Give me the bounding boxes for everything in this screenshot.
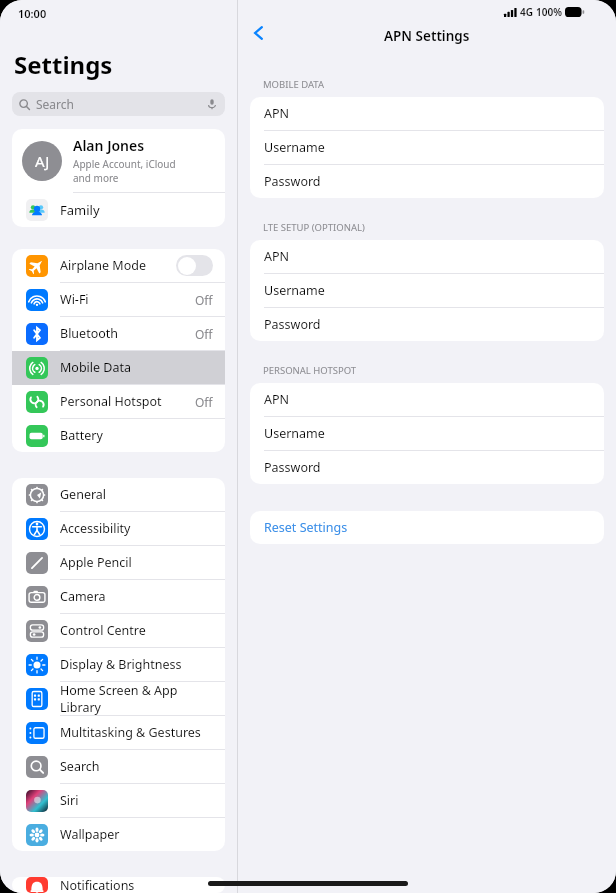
staticText: Username <box>264 425 325 442</box>
staticText: Personal Hotspot <box>60 393 162 410</box>
staticText: Apple Pencil <box>60 554 132 571</box>
staticText: Apple Account, iCloud <box>73 157 176 171</box>
button[interactable]: Airplane Mode toggle <box>176 255 213 276</box>
staticText: Control Centre <box>60 622 146 639</box>
staticText: Off <box>195 394 213 410</box>
staticText: Username <box>264 139 325 156</box>
staticText: Password <box>264 173 321 190</box>
staticText: Password <box>264 316 321 333</box>
staticText: Notifications <box>60 877 135 893</box>
button[interactable]: Display & Brightness <box>12 648 225 681</box>
staticText: Search <box>36 96 74 112</box>
button[interactable]: AJ <box>12 129 225 192</box>
button[interactable]: APN <box>250 97 604 130</box>
button[interactable]: Airplane Mode <box>12 249 225 282</box>
staticText: and more <box>73 171 119 185</box>
button[interactable]: Camera <box>12 580 225 613</box>
button[interactable]: Reset Settings <box>250 511 604 544</box>
button[interactable]: Username <box>250 131 604 164</box>
button[interactable]: Control Centre <box>12 614 225 647</box>
staticText: Airplane Mode <box>60 257 146 274</box>
staticText: Siri <box>60 792 79 809</box>
button[interactable]: General <box>12 478 225 511</box>
staticText: Display & Brightness <box>60 656 182 673</box>
button[interactable]: Home Screen & App Library <box>12 682 225 715</box>
button[interactable]: Multitasking & Gestures <box>12 716 225 749</box>
button[interactable]: Password <box>250 165 604 198</box>
button[interactable]: Username <box>250 274 604 307</box>
button[interactable]: Battery <box>12 419 225 452</box>
staticText: APN <box>264 391 290 408</box>
button[interactable]: APN <box>250 240 604 273</box>
staticText: APN <box>264 105 290 122</box>
button[interactable]: Family <box>12 193 225 227</box>
staticText: PERSONAL HOTSPOT <box>263 364 357 377</box>
button[interactable]: Back <box>242 16 276 50</box>
staticText: General <box>60 486 107 503</box>
button[interactable]: Apple Pencil <box>12 546 225 579</box>
staticText: Reset Settings <box>264 519 348 536</box>
staticText: Alan Jones <box>73 136 145 155</box>
button[interactable]: Username <box>250 417 604 450</box>
staticText: Password <box>264 459 321 476</box>
staticText: Multitasking & Gestures <box>60 724 201 741</box>
staticText: 10:00 <box>18 6 47 21</box>
button[interactable]: Search <box>12 750 225 783</box>
button[interactable]: Wi-Fi <box>12 283 225 316</box>
staticText: Home Screen & App Library <box>60 682 213 715</box>
staticText: 100% <box>536 5 562 19</box>
staticText: MOBILE DATA <box>263 78 324 91</box>
button[interactable]: Personal Hotspot <box>12 385 225 418</box>
staticText: Family <box>60 201 100 219</box>
staticText: Mobile Data <box>60 359 132 376</box>
staticText: Wallpaper <box>60 826 120 843</box>
button[interactable]: Password <box>250 451 604 484</box>
button[interactable]: Search <box>12 92 225 116</box>
staticText: Off <box>195 292 213 308</box>
button[interactable]: Wallpaper <box>12 818 225 851</box>
button[interactable]: APN <box>250 383 604 416</box>
staticText: Settings <box>14 48 113 81</box>
staticText: LTE SETUP (OPTIONAL) <box>263 221 365 234</box>
button[interactable]: Notifications <box>12 877 225 893</box>
staticText: 4G <box>520 5 533 19</box>
staticText: Battery <box>60 427 103 444</box>
button[interactable]: Bluetooth <box>12 317 225 350</box>
staticText: Camera <box>60 588 106 605</box>
staticText: Off <box>195 326 213 342</box>
staticText: Search <box>60 758 100 775</box>
staticText: APN <box>264 248 290 265</box>
staticText: APN Settings <box>384 27 470 45</box>
staticText: Accessibility <box>60 520 131 537</box>
button[interactable]: Accessibility <box>12 512 225 545</box>
staticText: Wi-Fi <box>60 291 89 308</box>
staticText: Bluetooth <box>60 325 119 342</box>
button[interactable]: Siri <box>12 784 225 817</box>
staticText: AJ <box>35 151 50 171</box>
button[interactable]: Password <box>250 308 604 341</box>
staticText: Username <box>264 282 325 299</box>
button[interactable]: Mobile Data <box>12 351 225 384</box>
